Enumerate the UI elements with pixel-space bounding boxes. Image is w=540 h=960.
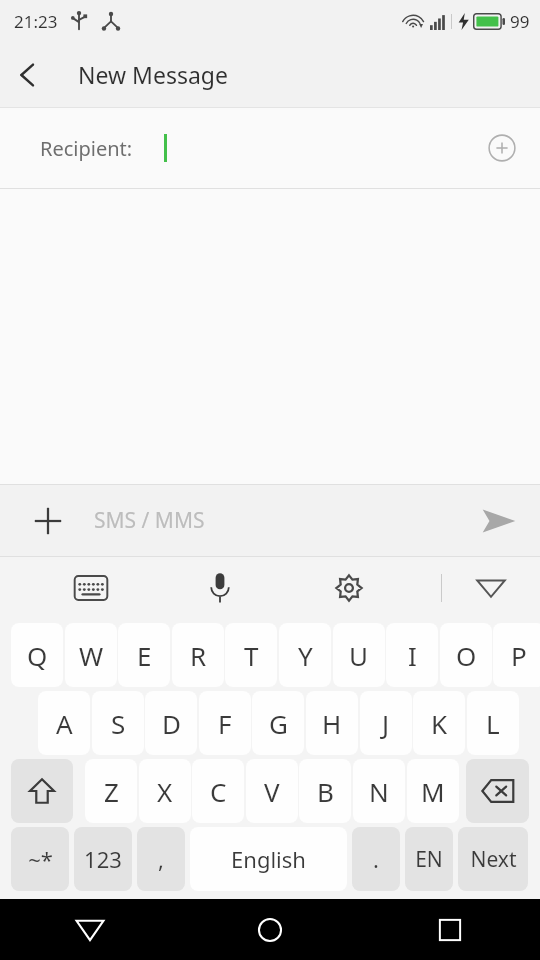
button[interactable]: Recents: [360, 899, 540, 960]
staticText: R: [190, 638, 207, 673]
staticText: Q: [27, 638, 48, 673]
staticText: P: [511, 638, 527, 673]
staticText: C: [210, 774, 227, 809]
button[interactable]: Settings: [324, 563, 374, 613]
button[interactable]: S: [92, 691, 144, 755]
staticText: Y: [298, 638, 313, 673]
button[interactable]: Back: [0, 899, 180, 960]
button[interactable]: ,: [137, 827, 185, 891]
button[interactable]: E: [118, 623, 170, 687]
staticText: .: [373, 844, 379, 874]
button[interactable]: I: [386, 623, 438, 687]
staticText: L: [486, 706, 500, 741]
button[interactable]: Z: [85, 759, 137, 823]
staticText: New Message: [78, 59, 228, 90]
button[interactable]: U: [333, 623, 385, 687]
staticText: O: [456, 638, 477, 673]
button[interactable]: L: [467, 691, 519, 755]
button[interactable]: Back: [0, 48, 54, 102]
button[interactable]: D: [145, 691, 197, 755]
button[interactable]: G: [252, 691, 304, 755]
button[interactable]: Keyboard layout: [66, 563, 116, 613]
staticText: Next: [470, 845, 517, 874]
button[interactable]: Voice input: [195, 563, 245, 613]
staticText: A: [56, 706, 73, 741]
staticText: N: [369, 774, 389, 809]
button[interactable]: R: [172, 623, 224, 687]
staticText: J: [382, 706, 390, 741]
staticText: T: [244, 638, 259, 673]
button[interactable]: V: [246, 759, 298, 823]
staticText: V: [264, 774, 280, 809]
staticText: G: [269, 706, 288, 741]
staticText: SMS / MMS: [94, 506, 205, 535]
button[interactable]: English: [190, 827, 347, 891]
button[interactable]: Home: [180, 899, 360, 960]
button[interactable]: EN: [405, 827, 453, 891]
button[interactable]: P: [493, 623, 540, 687]
staticText: 123: [84, 844, 122, 874]
staticText: I: [408, 638, 417, 673]
button[interactable]: Next: [458, 827, 528, 891]
button[interactable]: W: [65, 623, 117, 687]
button[interactable]: B: [299, 759, 351, 823]
button[interactable]: Hide keyboard: [466, 563, 516, 613]
button[interactable]: K: [413, 691, 465, 755]
button[interactable]: 123: [74, 827, 132, 891]
button[interactable]: C: [192, 759, 244, 823]
staticText: F: [218, 706, 232, 741]
staticText: Recipient:: [40, 135, 133, 162]
button[interactable]: Send: [472, 494, 526, 548]
button[interactable]: A: [38, 691, 90, 755]
button[interactable]: N: [353, 759, 405, 823]
button[interactable]: Y: [279, 623, 331, 687]
button[interactable]: Add recipient: [478, 124, 526, 172]
staticText: ,: [158, 844, 164, 874]
button[interactable]: Attach: [22, 495, 74, 547]
button[interactable]: ~*: [11, 827, 69, 891]
button[interactable]: .: [352, 827, 400, 891]
staticText: 99: [510, 10, 530, 33]
staticText: 21:23: [14, 10, 58, 33]
staticText: M: [421, 774, 445, 809]
staticText: X: [157, 774, 173, 809]
button[interactable]: Backspace: [466, 759, 529, 823]
staticText: U: [349, 638, 369, 673]
button[interactable]: T: [225, 623, 277, 687]
staticText: W: [79, 638, 104, 673]
button[interactable]: X: [139, 759, 191, 823]
button[interactable]: J: [360, 691, 412, 755]
staticText: English: [231, 844, 306, 874]
button[interactable]: O: [440, 623, 492, 687]
staticText: D: [162, 706, 181, 741]
staticText: EN: [415, 845, 443, 874]
button[interactable]: Q: [11, 623, 63, 687]
button[interactable]: F: [199, 691, 251, 755]
button[interactable]: H: [306, 691, 358, 755]
staticText: K: [431, 706, 448, 741]
button[interactable]: Shift: [11, 759, 73, 823]
staticText: Z: [104, 774, 119, 809]
staticText: H: [322, 706, 342, 741]
staticText: B: [317, 774, 334, 809]
staticText: S: [111, 706, 126, 741]
staticText: E: [137, 638, 152, 673]
staticText: ~*: [28, 844, 53, 874]
button[interactable]: M: [407, 759, 459, 823]
